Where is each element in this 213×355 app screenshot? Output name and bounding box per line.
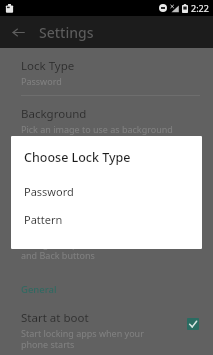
staticText: 2:22: [191, 2, 209, 14]
button[interactable]: Pattern: [11, 210, 202, 229]
staticText: Start at boot: [21, 310, 89, 326]
staticText: Start locking apps when your phone start…: [21, 327, 144, 350]
staticText: Lock Type: [21, 58, 75, 74]
staticText: Password: [24, 184, 74, 199]
staticText: Change the position of the OK and Back b…: [21, 238, 149, 261]
button[interactable]: Back: [8, 22, 28, 42]
staticText: Pattern: [24, 212, 63, 227]
staticText: Password: [21, 75, 62, 87]
staticText: General: [21, 283, 57, 296]
staticText: Settings: [39, 23, 94, 42]
button[interactable]: Start at boot: [0, 310, 213, 350]
button[interactable]: Lock Type: [0, 58, 213, 87]
staticText: Switch buttons: [21, 221, 102, 237]
button[interactable]: Background: [0, 106, 213, 135]
staticText: Background: [21, 106, 87, 122]
staticText: Choose Lock Type: [24, 149, 131, 166]
button[interactable]: Password: [11, 182, 202, 201]
staticText: Pick an image to use as background: [21, 123, 173, 135]
button[interactable]: Switch buttons: [0, 221, 213, 261]
